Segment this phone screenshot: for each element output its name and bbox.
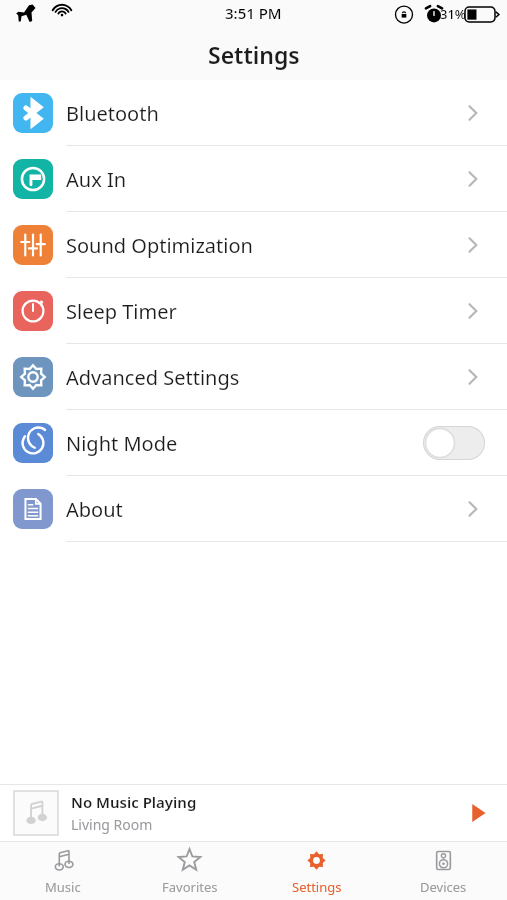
button[interactable]: Play xyxy=(463,798,493,828)
staticText: Advanced Settings xyxy=(66,364,463,391)
button[interactable]: About xyxy=(0,476,507,542)
staticText: Music xyxy=(45,878,81,896)
staticText: 31% xyxy=(440,5,466,23)
button[interactable]: Advanced Settings xyxy=(0,344,507,410)
staticText: Night Mode xyxy=(66,430,423,457)
button[interactable]: Night Mode toggle xyxy=(423,426,485,460)
staticText: Settings xyxy=(292,878,342,896)
staticText: No Music Playing xyxy=(71,792,197,812)
button[interactable]: Sleep Timer xyxy=(0,278,507,344)
button[interactable]: Music xyxy=(0,842,126,900)
button[interactable]: Aux In xyxy=(0,146,507,212)
staticText: Settings xyxy=(208,39,300,70)
staticText: 3:51 PM xyxy=(225,3,282,23)
staticText: About xyxy=(66,496,463,523)
staticText: Sleep Timer xyxy=(66,298,463,325)
staticText: Bluetooth xyxy=(66,100,463,127)
staticText: Favorites xyxy=(162,878,218,896)
staticText: Sound Optimization xyxy=(66,232,463,259)
staticText: Devices xyxy=(420,878,467,896)
button[interactable]: Sound Optimization xyxy=(0,212,507,278)
button[interactable]: Night Mode xyxy=(0,410,507,476)
button[interactable]: Bluetooth xyxy=(0,80,507,146)
button[interactable]: Favorites xyxy=(126,842,253,900)
staticText: Living Room xyxy=(71,815,153,834)
button[interactable]: Devices xyxy=(380,842,507,900)
button[interactable]: No Music Playing xyxy=(0,785,507,841)
staticText: Aux In xyxy=(66,166,463,193)
button[interactable]: Settings xyxy=(253,842,380,900)
